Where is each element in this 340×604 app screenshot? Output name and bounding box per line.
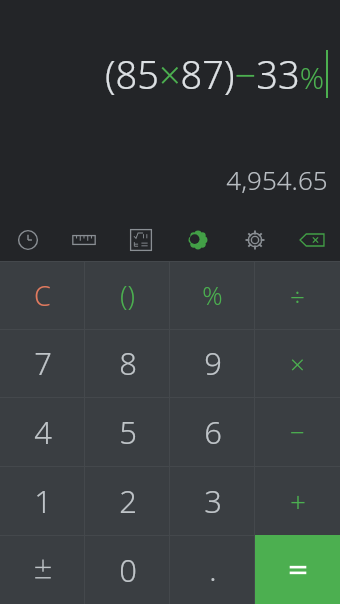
staticText: C bbox=[34, 277, 51, 314]
staticText: 4,954.65 bbox=[226, 162, 328, 197]
staticText: + bbox=[290, 482, 306, 520]
staticText: 7 bbox=[34, 342, 52, 384]
staticText: 2 bbox=[119, 480, 137, 522]
staticText: % bbox=[202, 278, 223, 312]
button[interactable]: . bbox=[170, 535, 255, 604]
button[interactable]: 7 bbox=[0, 329, 85, 397]
button[interactable]: 5 bbox=[85, 397, 170, 466]
staticText: 3 bbox=[204, 480, 222, 522]
button[interactable]: 4 bbox=[0, 397, 85, 466]
button[interactable] bbox=[0, 535, 85, 604]
button[interactable]: % bbox=[170, 261, 255, 329]
button[interactable]: History bbox=[0, 218, 56, 261]
button[interactable]: ÷ bbox=[255, 261, 340, 329]
staticText: 9 bbox=[204, 342, 222, 384]
button[interactable]: 9 bbox=[170, 329, 255, 397]
staticText: 0 bbox=[119, 549, 137, 591]
button[interactable]: 0 bbox=[85, 535, 170, 604]
button[interactable]: () bbox=[85, 261, 170, 329]
button[interactable]: Backspace bbox=[283, 218, 340, 261]
staticText: ÷ bbox=[290, 278, 305, 313]
button[interactable]: 8 bbox=[85, 329, 170, 397]
button[interactable]: + bbox=[255, 466, 340, 535]
staticText: 5 bbox=[119, 411, 137, 453]
button[interactable]: 2 bbox=[85, 466, 170, 535]
staticText: 4 bbox=[34, 411, 52, 453]
button[interactable]: Scientific functions bbox=[112, 218, 169, 261]
button[interactable]: 3 bbox=[170, 466, 255, 535]
staticText: 8 bbox=[119, 342, 137, 384]
button[interactable]: 1 bbox=[0, 466, 85, 535]
button[interactable]: × bbox=[255, 329, 340, 397]
button[interactable]: C bbox=[0, 261, 85, 329]
staticText: × bbox=[290, 346, 305, 381]
button[interactable] bbox=[255, 535, 340, 604]
button[interactable]: 6 bbox=[170, 397, 255, 466]
button[interactable]: − bbox=[255, 397, 340, 466]
staticText: 6 bbox=[204, 411, 222, 453]
button[interactable]: Unit converter bbox=[56, 218, 112, 261]
button[interactable]: Theme bbox=[169, 218, 226, 261]
staticText: 1 bbox=[34, 480, 52, 522]
staticText: − bbox=[290, 414, 305, 449]
staticText: . bbox=[209, 549, 217, 590]
staticText: () bbox=[120, 277, 135, 314]
staticText: (85×87)−33% bbox=[105, 48, 324, 100]
button[interactable]: Settings bbox=[226, 218, 283, 261]
